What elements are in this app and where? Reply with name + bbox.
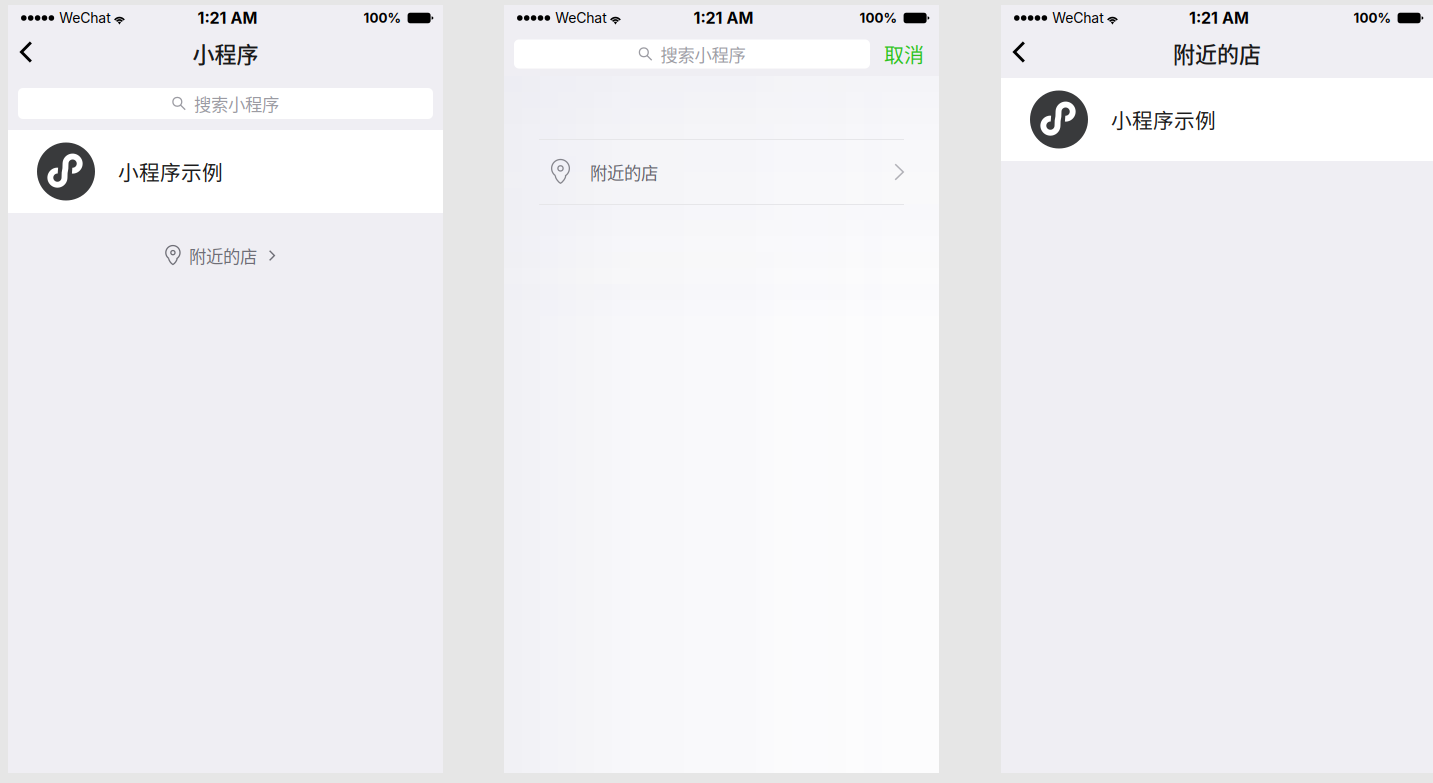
staticText: WeChat xyxy=(555,9,607,26)
staticText: 1:21 AM xyxy=(1189,8,1249,28)
button[interactable]: 小程序示例 xyxy=(1001,78,1433,161)
staticText: 100% xyxy=(1354,10,1392,26)
button[interactable]: 搜索小程序 xyxy=(514,39,870,68)
staticText: 搜索小程序 xyxy=(194,91,279,116)
button[interactable]: 附近的店 xyxy=(161,234,290,277)
staticText: 附近的店 xyxy=(189,243,257,268)
staticText: WeChat xyxy=(1052,9,1104,26)
button[interactable]: Back xyxy=(8,31,46,78)
button[interactable]: 取消 xyxy=(870,39,938,69)
staticText: 小程序示例 xyxy=(118,156,223,186)
button[interactable]: 搜索小程序 xyxy=(18,88,433,119)
staticText: 小程序 xyxy=(192,37,258,69)
button[interactable]: Back xyxy=(1001,31,1039,78)
button[interactable]: 小程序示例 xyxy=(8,130,443,213)
staticText: 100% xyxy=(364,10,402,26)
staticText: 附近的店 xyxy=(590,159,658,185)
staticText: 100% xyxy=(860,10,898,26)
staticText: WeChat xyxy=(59,9,111,26)
staticText: 取消 xyxy=(884,39,924,68)
button[interactable]: 附近的店 xyxy=(504,140,939,204)
staticText: 小程序示例 xyxy=(1111,104,1216,134)
staticText: 1:21 AM xyxy=(693,8,753,28)
staticText: 1:21 AM xyxy=(197,8,257,28)
staticText: 附近的店 xyxy=(1173,37,1261,69)
staticText: 搜索小程序 xyxy=(660,41,745,67)
